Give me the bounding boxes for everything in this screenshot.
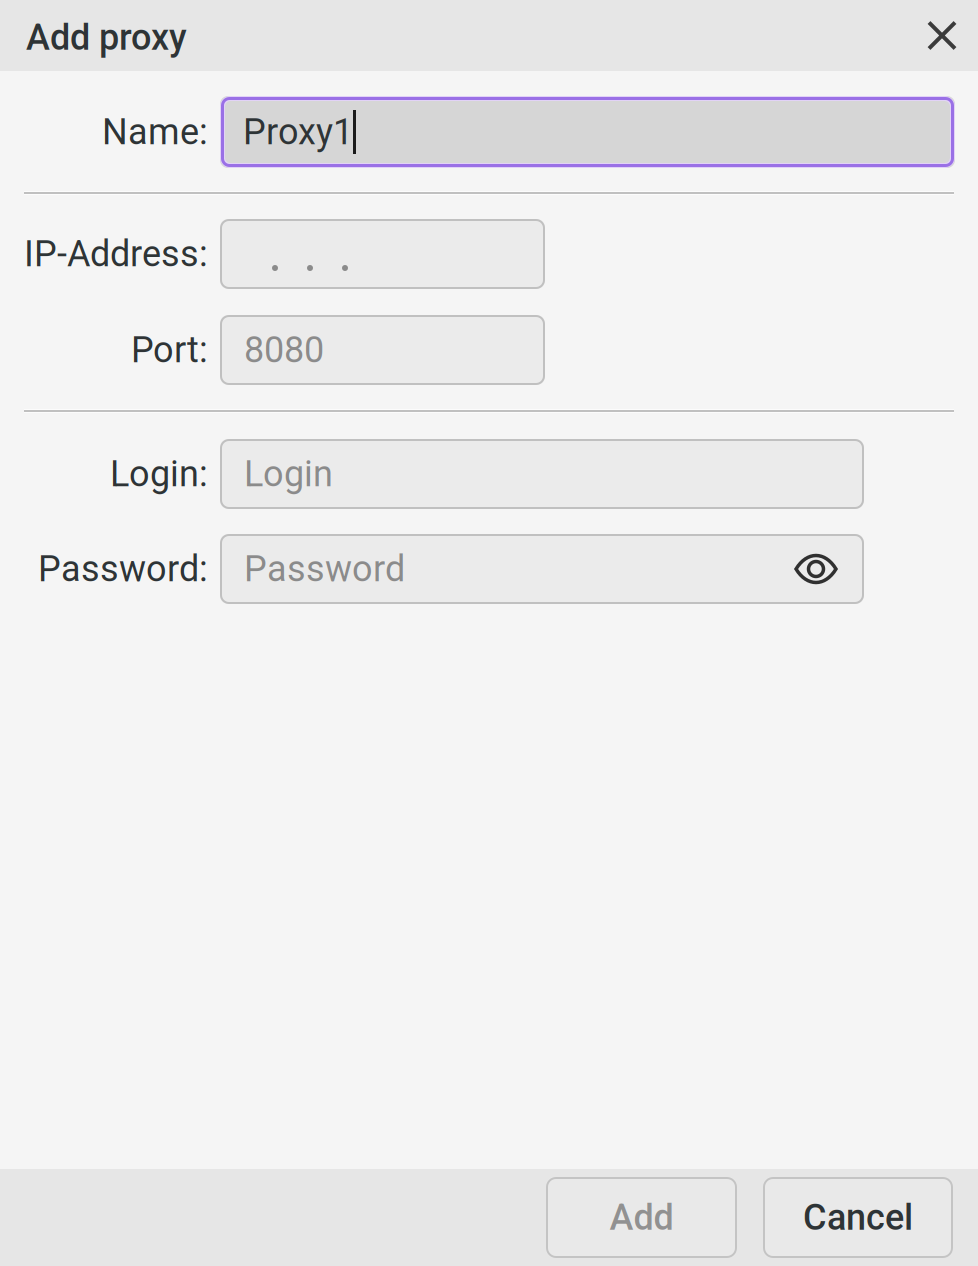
staticText: Login <box>244 453 333 495</box>
staticText: Port: <box>131 329 208 371</box>
staticText: Add <box>609 1196 673 1239</box>
staticText: IP-Address: <box>24 233 208 275</box>
staticText: Login: <box>110 453 208 495</box>
staticText: Password: <box>38 548 208 590</box>
staticText: Name: <box>102 111 208 153</box>
button[interactable]: Add <box>546 1177 737 1258</box>
button[interactable]: Show password <box>788 545 844 593</box>
staticText: Password <box>244 548 405 590</box>
staticText: Add proxy <box>26 16 187 59</box>
button[interactable]: Cancel <box>763 1177 953 1258</box>
button[interactable]: Close <box>916 9 968 61</box>
staticText: Proxy1 <box>243 111 353 153</box>
staticText: Cancel <box>803 1196 913 1239</box>
staticText: 8080 <box>244 329 324 371</box>
